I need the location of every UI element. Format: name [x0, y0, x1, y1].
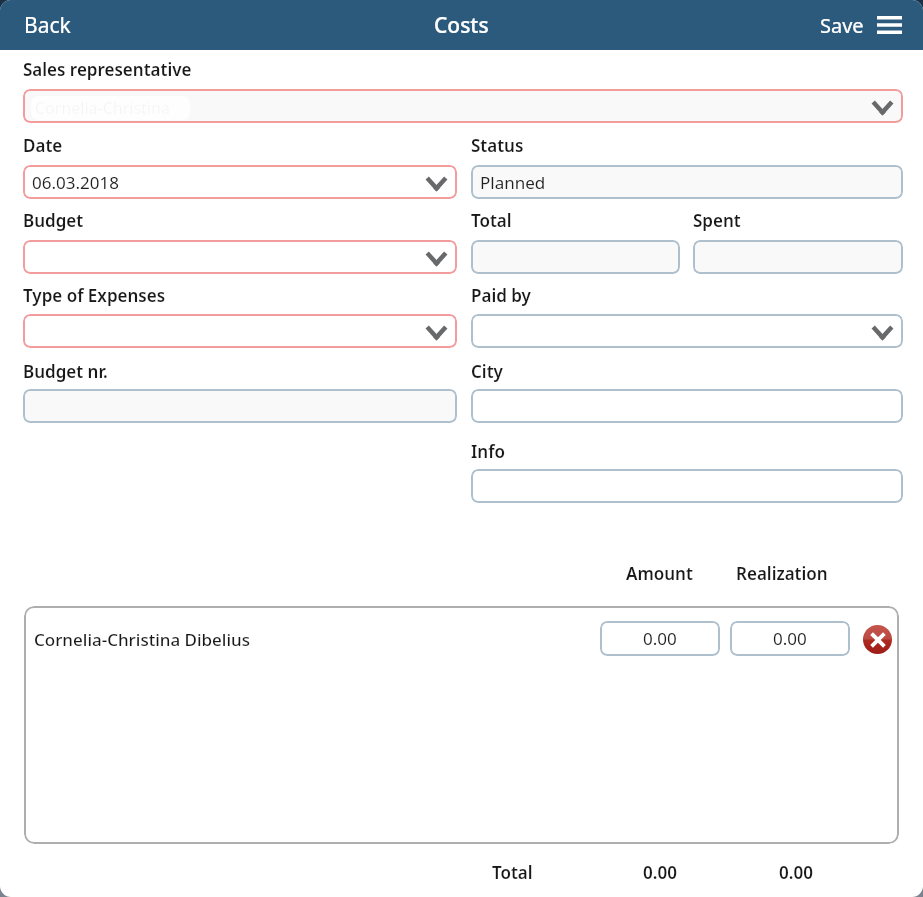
button[interactable]: Cornelia-Christina Dibelius	[24, 606, 899, 672]
staticText: Sales representative	[23, 58, 192, 81]
button[interactable]: Info	[471, 469, 903, 503]
staticText: Date	[23, 134, 63, 157]
button[interactable]: Paid by	[471, 314, 903, 348]
staticText: City	[471, 360, 503, 383]
button[interactable]: Sales representative	[23, 89, 903, 123]
button[interactable]: Planned	[471, 165, 903, 199]
button[interactable]: 0.00	[600, 621, 720, 656]
staticText: Total	[492, 861, 533, 884]
button[interactable]: Menu	[869, 0, 910, 50]
staticText: Cornelia-Christina Dibelius	[34, 628, 250, 651]
button[interactable]: Total	[471, 240, 680, 274]
button[interactable]: Save	[812, 2, 872, 49]
staticText: Realization	[736, 562, 828, 585]
button[interactable]: Type of Expenses	[23, 314, 457, 348]
button[interactable]: Back	[0, 1, 89, 50]
staticText: 0.00	[643, 861, 677, 884]
staticText: Save	[820, 12, 864, 39]
staticText: Costs	[434, 11, 489, 40]
staticText: 0.00	[779, 861, 813, 884]
staticText: Status	[471, 134, 524, 157]
staticText: Budget	[23, 209, 84, 232]
staticText: Spent	[693, 209, 741, 232]
staticText: Total	[471, 209, 512, 232]
button[interactable]: Delete	[863, 625, 892, 654]
staticText: 0.00	[773, 627, 807, 650]
button[interactable]: City	[471, 389, 903, 423]
staticText: Info	[471, 440, 505, 463]
button[interactable]: Budget	[23, 240, 457, 274]
staticText: 06.03.2018	[32, 171, 119, 194]
staticText: Amount	[626, 562, 693, 585]
staticText: Paid by	[471, 284, 531, 307]
staticText: Planned	[480, 171, 546, 194]
button[interactable]: Spent	[693, 240, 903, 274]
button[interactable]: 06.03.2018	[23, 165, 457, 199]
staticText: Type of Expenses	[23, 284, 166, 307]
button[interactable]: 0.00	[730, 621, 850, 656]
button[interactable]: Budget nr.	[23, 389, 457, 423]
staticText: Budget nr.	[23, 360, 108, 383]
staticText: 0.00	[643, 627, 677, 650]
